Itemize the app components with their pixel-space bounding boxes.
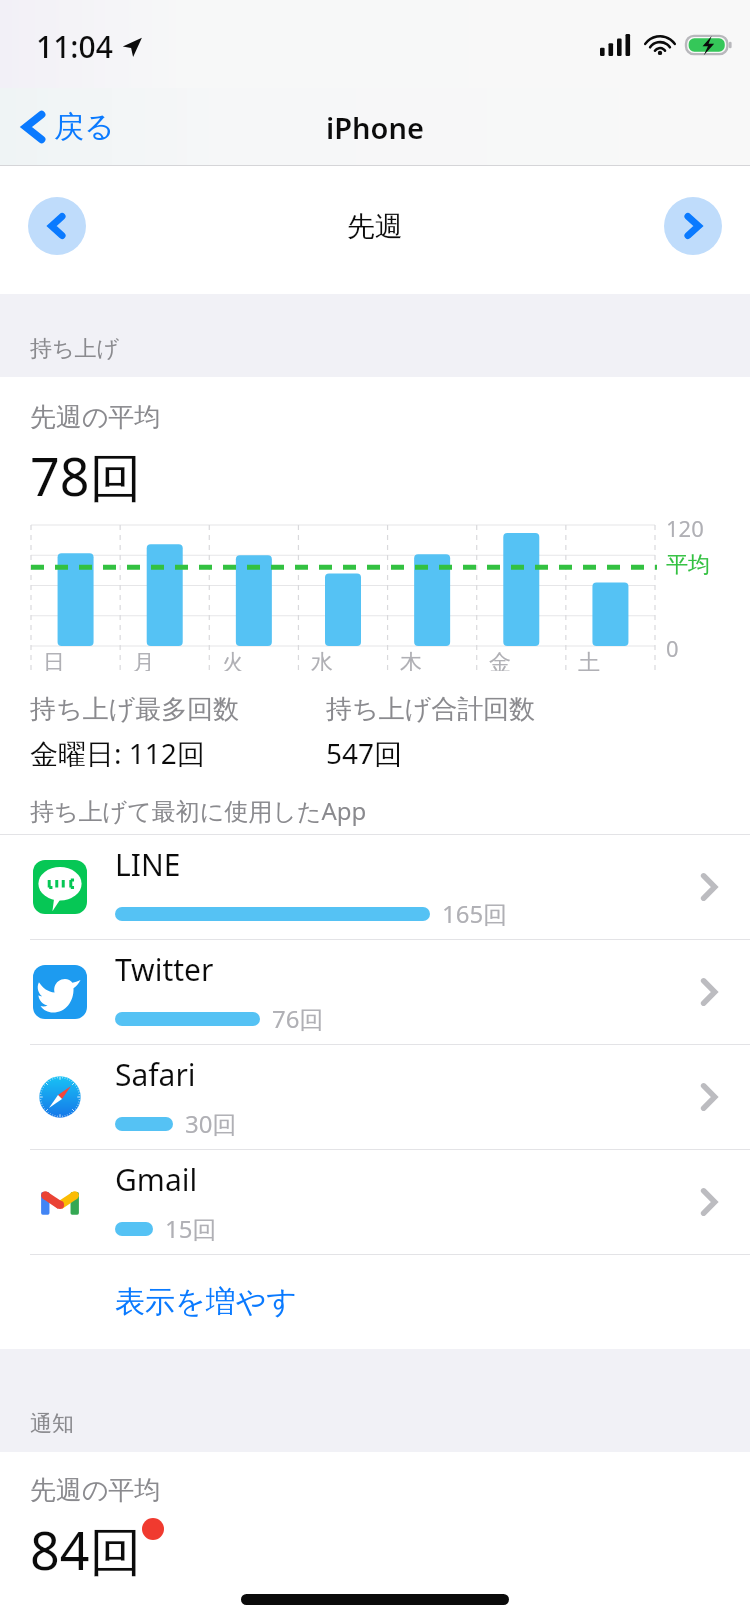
staticText: 持ち上げて最初に使用したApp (30, 794, 367, 827)
staticText: 78回 (30, 440, 142, 511)
staticText: iPhone (326, 108, 424, 147)
staticText: 土 (578, 649, 600, 677)
button[interactable]: 表示を増やす (0, 1255, 750, 1349)
button[interactable]: LINE (0, 835, 750, 939)
staticText: 水 (311, 649, 333, 677)
button[interactable]: 戻る (16, 102, 121, 152)
staticText: 先週 (347, 209, 403, 244)
staticText: 120 (666, 513, 704, 543)
staticText: 547回 (326, 734, 403, 772)
staticText: 持ち上げ最多回数 (30, 693, 240, 726)
staticText: 15回 (165, 1212, 217, 1245)
staticText: 0 (666, 633, 679, 663)
button[interactable]: Gmail (0, 1150, 750, 1254)
staticText: 76回 (272, 1002, 324, 1035)
staticText: 日 (43, 649, 65, 677)
staticText: 月 (133, 649, 155, 677)
staticText: LINE (115, 844, 181, 885)
staticText: 通知 (30, 1410, 74, 1438)
staticText: Gmail (115, 1159, 198, 1200)
button[interactable]: Safari (0, 1045, 750, 1149)
staticText: 戻る (54, 108, 115, 146)
staticText: 平均 (666, 551, 710, 579)
staticText: Twitter (115, 949, 214, 990)
staticText: 持ち上げ合計回数 (326, 693, 536, 726)
staticText: 木 (400, 649, 422, 677)
staticText: 金 (489, 649, 511, 677)
staticText: 表示を増やす (115, 1283, 298, 1321)
staticText: 持ち上げ (30, 335, 120, 363)
staticText: 火 (222, 649, 244, 677)
staticText: Safari (115, 1054, 196, 1095)
staticText: 165回 (442, 897, 508, 930)
button[interactable]: 前の週 (28, 197, 86, 255)
button[interactable]: 次の週 (664, 197, 722, 255)
staticText: 11:04 (36, 26, 113, 67)
button[interactable]: Twitter (0, 940, 750, 1044)
staticText: 30回 (185, 1107, 237, 1140)
staticText: 先週の平均 (30, 401, 161, 434)
staticText: 金曜日: 112回 (30, 734, 205, 772)
staticText: 84回 (30, 1514, 142, 1585)
staticText: 先週の平均 (30, 1474, 161, 1507)
